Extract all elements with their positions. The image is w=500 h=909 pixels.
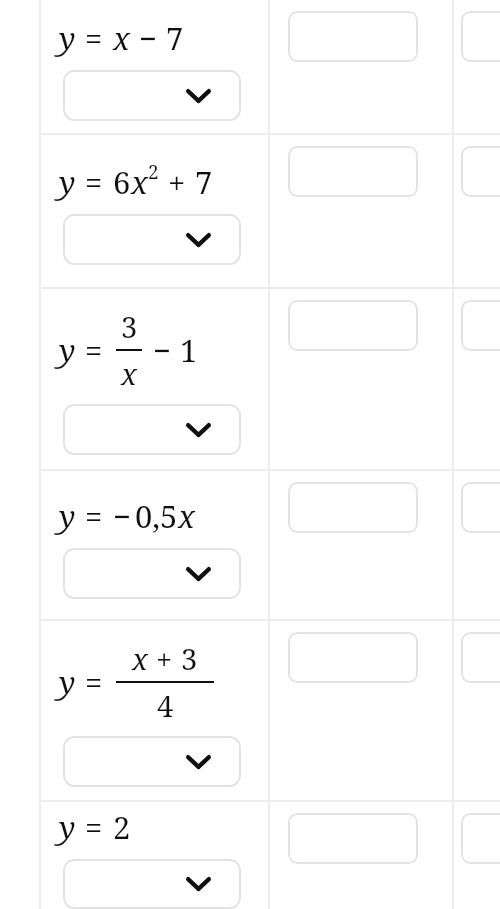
staticText: 7 bbox=[195, 161, 213, 203]
staticText: = bbox=[85, 806, 103, 848]
staticText: y bbox=[59, 17, 76, 59]
staticText: = bbox=[85, 495, 103, 537]
staticText: 2 bbox=[148, 159, 159, 185]
button[interactable]: Select function type bbox=[63, 859, 241, 909]
staticText: − bbox=[139, 17, 157, 59]
staticText: y bbox=[59, 806, 76, 848]
staticText: + bbox=[168, 161, 186, 203]
button[interactable]: Select function type bbox=[63, 70, 241, 121]
staticText: 0,5 bbox=[135, 495, 178, 537]
button[interactable]: Answer field bbox=[288, 300, 418, 351]
staticText: 3 bbox=[181, 639, 198, 678]
staticText: x bbox=[121, 354, 137, 393]
staticText: = bbox=[85, 661, 103, 703]
button[interactable]: Answer field bbox=[461, 146, 500, 197]
staticText: y bbox=[59, 161, 76, 203]
button[interactable]: Answer field bbox=[288, 146, 418, 197]
button[interactable]: Answer field bbox=[461, 11, 500, 62]
staticText: x bbox=[178, 495, 195, 537]
staticText: 4 bbox=[157, 686, 174, 725]
button[interactable]: Select function type bbox=[63, 404, 241, 455]
staticText: 1 bbox=[180, 329, 198, 371]
staticText: y bbox=[59, 329, 76, 371]
button[interactable]: Select function type bbox=[63, 548, 241, 599]
staticText: y bbox=[59, 495, 76, 537]
button[interactable]: Answer field bbox=[461, 482, 500, 533]
button[interactable]: Select function type bbox=[63, 736, 241, 787]
button[interactable]: Answer field bbox=[461, 300, 500, 351]
button[interactable]: Select function type bbox=[63, 214, 241, 265]
staticText: x bbox=[113, 17, 130, 59]
staticText: − bbox=[113, 495, 131, 537]
staticText: x bbox=[132, 639, 148, 678]
staticText: y bbox=[59, 661, 76, 703]
button[interactable]: Answer field bbox=[288, 11, 418, 62]
staticText: = bbox=[85, 161, 103, 203]
button[interactable]: Answer field bbox=[461, 632, 500, 683]
staticText: 7 bbox=[166, 17, 184, 59]
button[interactable]: Answer field bbox=[288, 482, 418, 533]
staticText: 3 bbox=[121, 307, 138, 346]
button[interactable]: Answer field bbox=[288, 813, 418, 864]
staticText: x bbox=[131, 161, 148, 203]
staticText: − bbox=[153, 329, 171, 371]
staticText: + bbox=[156, 639, 173, 678]
staticText: = bbox=[85, 329, 103, 371]
staticText: = bbox=[85, 17, 103, 59]
button[interactable]: Answer field bbox=[461, 813, 500, 864]
staticText: 2 bbox=[113, 806, 131, 848]
staticText: 6 bbox=[113, 161, 131, 203]
button[interactable]: Answer field bbox=[288, 632, 418, 683]
